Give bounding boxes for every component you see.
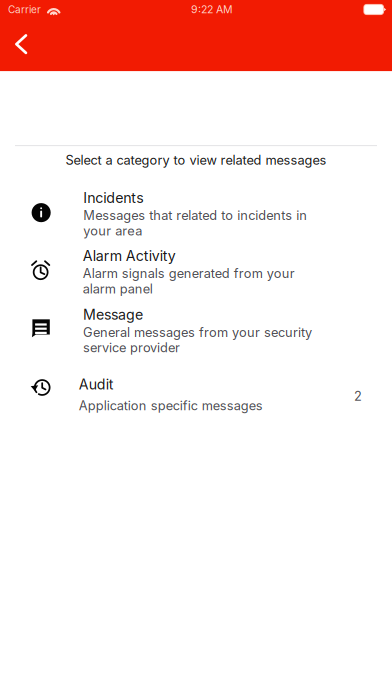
staticText: Alarm Activity [83,247,176,264]
staticText: Select a category to view related messag… [65,152,326,168]
staticText: service provider [83,340,180,355]
staticText: Message [83,306,143,323]
staticText: your area [83,223,142,239]
staticText: 9:22 AM [191,3,233,16]
button[interactable]: Alarm Activity [0,247,392,297]
staticText: 2 [354,388,362,404]
staticText: Messages that related to incidents in [83,208,307,223]
button[interactable]: Audit [0,376,392,413]
staticText: Alarm signals generated from your [83,266,295,281]
button[interactable]: Message [0,306,392,355]
staticText: Incidents [83,189,143,206]
button[interactable]: Incidents [0,189,392,239]
button[interactable]: Back [0,28,39,62]
staticText: Audit [79,376,114,393]
staticText: Carrier [8,3,41,16]
staticText: alarm panel [83,281,153,297]
staticText: Application specific messages [79,398,263,413]
staticText: General messages from your security [83,324,312,340]
